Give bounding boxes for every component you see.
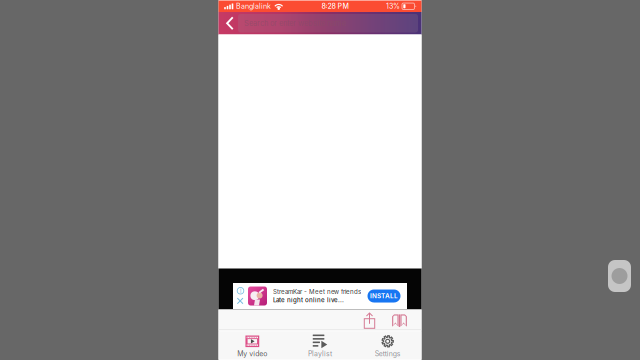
staticText: Search or enter website name (244, 19, 346, 28)
button[interactable]: Share (354, 310, 384, 331)
staticText: My video (237, 350, 267, 358)
button[interactable]: INSTALL (367, 289, 400, 302)
staticText: Banglalink (236, 2, 271, 10)
button[interactable]: Bookmarks (384, 310, 414, 331)
staticText: StreamKar - Meet new friends (273, 288, 361, 296)
staticText: INSTALL (370, 292, 398, 300)
staticText: Late night online live... (273, 296, 344, 304)
staticText: 8:28 PM (321, 2, 348, 10)
button[interactable]: Back (221, 12, 238, 34)
staticText: 13% (386, 2, 400, 10)
button[interactable]: Playlist (286, 330, 354, 360)
button[interactable]: My video (218, 330, 286, 360)
staticText: Playlist (308, 350, 332, 358)
button[interactable]: Settings (354, 330, 421, 360)
staticText: i (240, 287, 241, 294)
staticText: Settings (375, 350, 401, 358)
button[interactable]: Search or enter website name (238, 14, 418, 32)
